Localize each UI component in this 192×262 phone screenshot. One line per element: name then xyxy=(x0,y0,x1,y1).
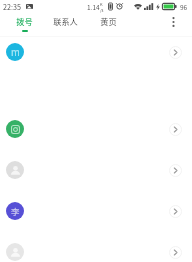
button[interactable]: More options xyxy=(163,13,183,37)
staticText: 李 xyxy=(11,205,20,217)
staticText: m xyxy=(11,45,20,59)
button[interactable]: 拨号 xyxy=(0,13,48,37)
staticText: 拨号 xyxy=(16,15,33,27)
staticText: 22:35 xyxy=(3,2,21,12)
staticText: 1.14 xyxy=(87,2,100,11)
button[interactable]: 联系人 xyxy=(48,13,82,37)
staticText: K xyxy=(100,1,103,7)
staticText: /s xyxy=(100,7,104,13)
staticText: 联系人 xyxy=(53,15,78,27)
button[interactable] xyxy=(0,151,192,189)
button[interactable]: 李 xyxy=(0,192,192,230)
button[interactable]: m xyxy=(0,33,192,71)
staticText: 黄页 xyxy=(100,15,117,27)
button[interactable] xyxy=(0,233,192,262)
staticText: 96 xyxy=(180,2,188,11)
button[interactable] xyxy=(0,110,192,148)
button[interactable]: 黄页 xyxy=(82,13,135,37)
